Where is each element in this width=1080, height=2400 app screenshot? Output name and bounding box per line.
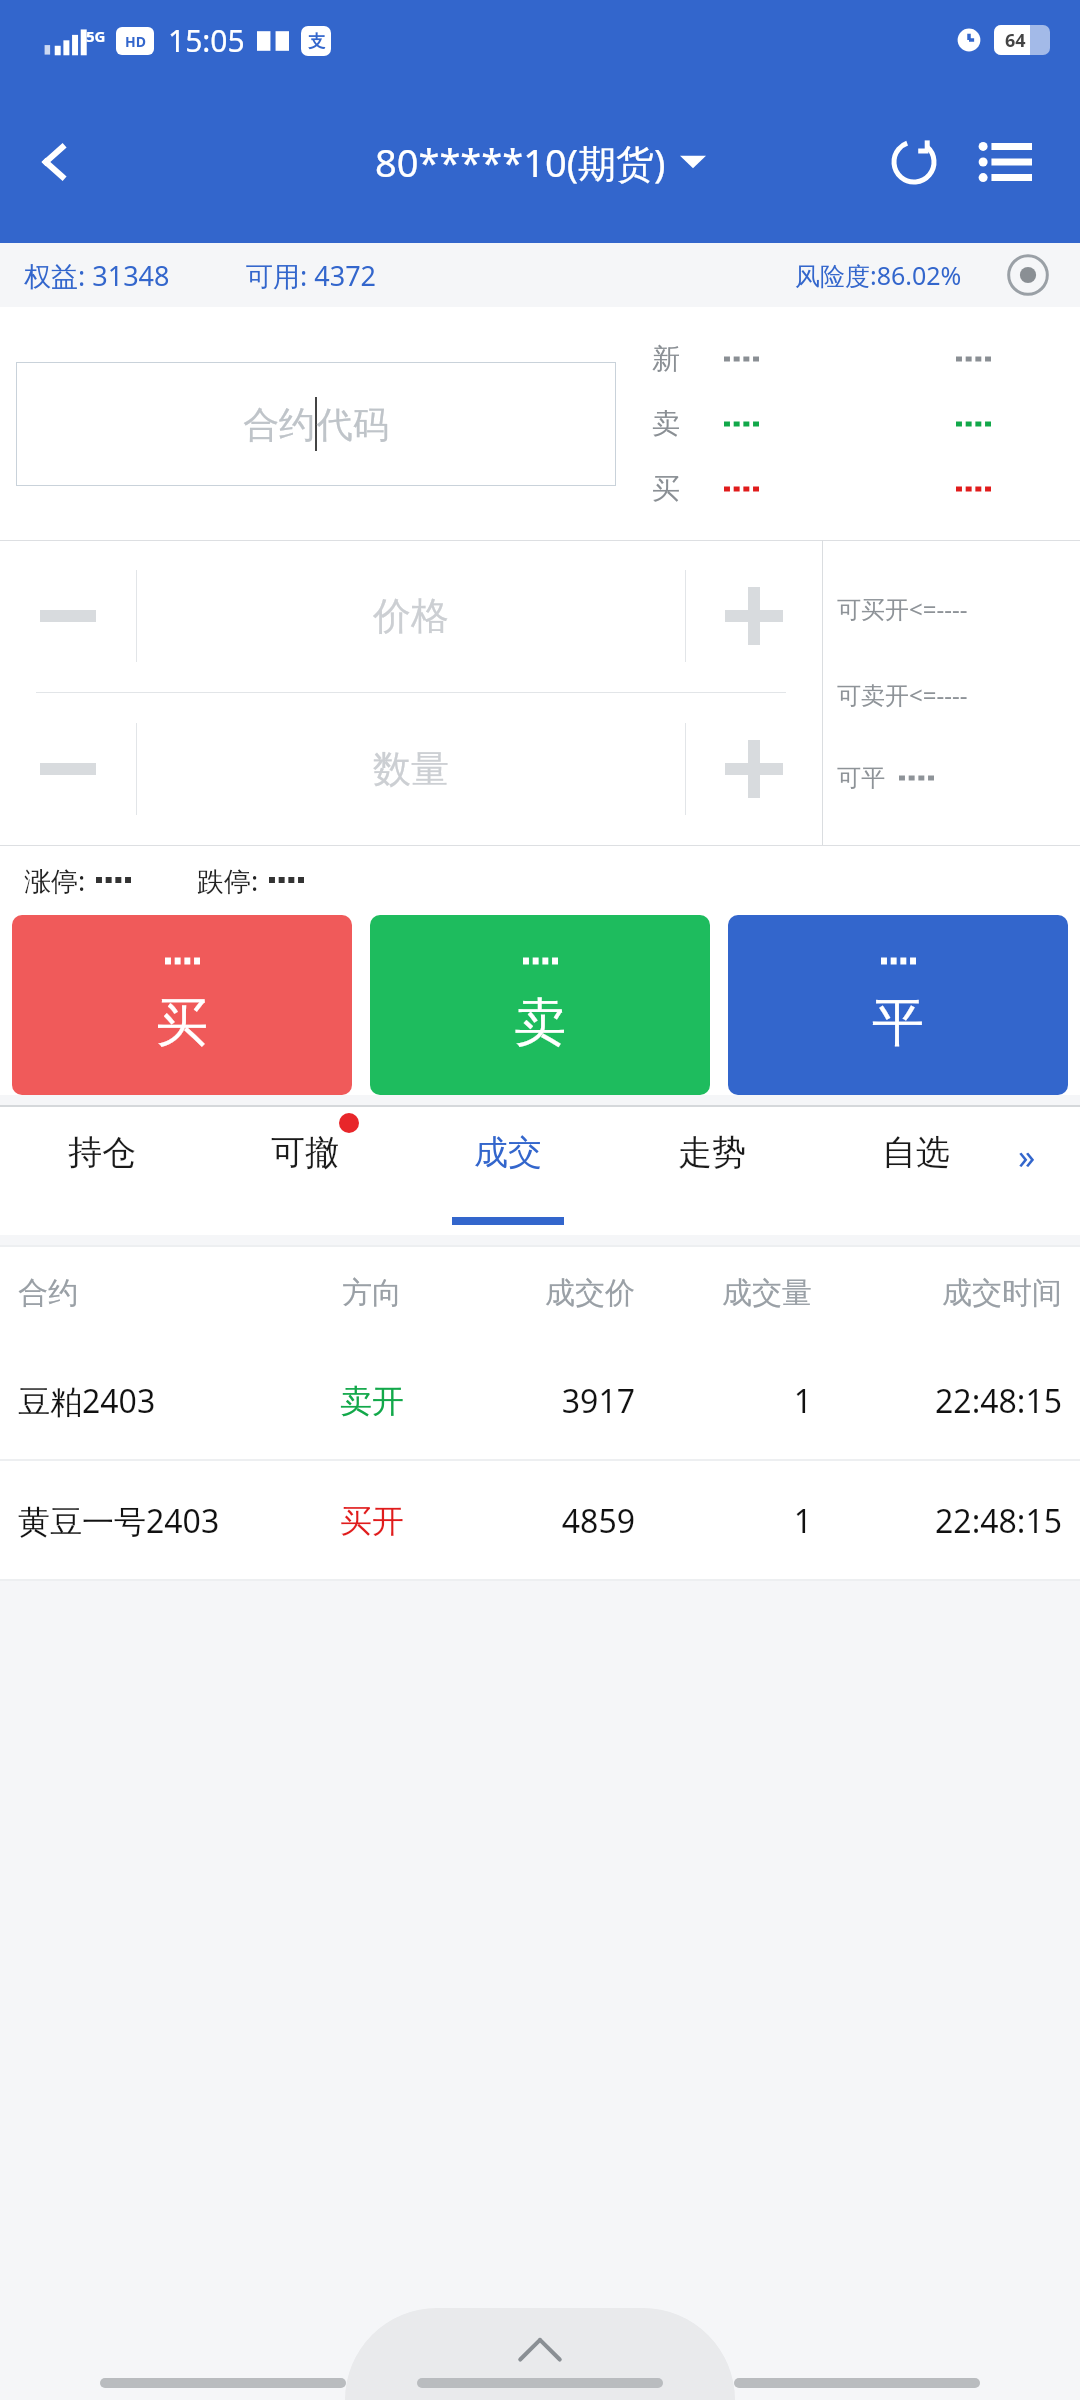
staticText: 风险度:86.02% <box>795 258 962 292</box>
staticText: 自选 <box>882 1131 950 1174</box>
staticText: 买 <box>652 471 706 506</box>
staticText: 5G <box>86 26 106 46</box>
staticText: 15:05 <box>168 20 245 61</box>
button[interactable]: Increase 价格 <box>686 540 822 692</box>
staticText: HD <box>125 32 146 51</box>
button[interactable]: Increase 数量 <box>686 693 822 845</box>
staticText: 80*****10(期货) <box>375 136 666 188</box>
staticText: 新 <box>652 341 706 376</box>
staticText: 价格 <box>373 592 449 640</box>
staticText: 4859 <box>451 1499 635 1543</box>
button[interactable]: 成交 <box>406 1105 610 1235</box>
button[interactable]: Back <box>0 80 110 243</box>
button[interactable]: Menu <box>960 116 1052 208</box>
button[interactable]: 可撤 <box>203 1105 406 1235</box>
button[interactable]: Navigation <box>100 2378 346 2388</box>
staticText: 豆粕2403 <box>18 1379 293 1423</box>
staticText: 可撤 <box>271 1131 339 1174</box>
button[interactable]: Toggle visibility <box>1000 247 1056 303</box>
staticText: 代码 <box>317 402 389 447</box>
staticText: 走势 <box>678 1131 746 1174</box>
staticText: 可平 <box>837 763 885 793</box>
button[interactable]: More tabs <box>1018 1105 1080 1235</box>
staticText: 可买开<=---- <box>837 592 968 625</box>
button[interactable]: Decrease 数量 <box>0 693 136 845</box>
button[interactable]: 自选 <box>814 1105 1018 1235</box>
staticText: 支 <box>308 31 325 52</box>
button[interactable]: 数量 <box>137 693 685 845</box>
staticText: 成交量 <box>635 1274 812 1312</box>
button[interactable]: Refresh <box>868 116 960 208</box>
button[interactable]: 合约 <box>16 362 616 486</box>
button[interactable]: 80*****10(期货) <box>375 136 706 188</box>
staticText: 可用: 4372 <box>246 257 377 294</box>
button[interactable]: 价格 <box>137 540 685 692</box>
staticText: 可卖开<=---- <box>837 678 968 711</box>
staticText: 买 <box>156 990 208 1056</box>
button[interactable]: Navigation <box>417 2378 663 2388</box>
staticText: 黄豆一号2403 <box>18 1499 293 1543</box>
button[interactable]: 持仓 <box>0 1105 203 1235</box>
staticText: 成交价 <box>451 1274 635 1312</box>
button[interactable]: Expand <box>345 2308 735 2400</box>
staticText: 22:48:15 <box>812 1379 1062 1423</box>
staticText: 64 <box>1005 28 1026 53</box>
staticText: 买开 <box>293 1501 451 1541</box>
button[interactable]: 豆粕2403 <box>0 1341 1080 1461</box>
staticText: 3917 <box>451 1379 635 1423</box>
staticText: 成交时间 <box>812 1274 1062 1312</box>
staticText: 1 <box>635 1499 812 1543</box>
button[interactable]: Navigation <box>734 2378 980 2388</box>
staticText: 跌停: <box>197 862 259 899</box>
staticText: 卖 <box>652 406 706 441</box>
staticText: 权益: 31348 <box>24 257 170 294</box>
staticText: 1 <box>635 1379 812 1423</box>
button[interactable]: 平 <box>728 915 1068 1095</box>
staticText: 持仓 <box>68 1131 136 1174</box>
staticText: 平 <box>872 990 924 1056</box>
staticText: » <box>1018 1133 1036 1179</box>
staticText: 涨停: <box>24 862 86 899</box>
button[interactable]: 黄豆一号2403 <box>0 1461 1080 1581</box>
button[interactable]: 买 <box>12 915 352 1095</box>
staticText: 合约 <box>18 1274 293 1312</box>
staticText: 卖开 <box>293 1381 451 1421</box>
staticText: 成交 <box>474 1131 542 1174</box>
button[interactable]: 卖 <box>370 915 710 1095</box>
staticText: 合约 <box>243 402 315 447</box>
staticText: 数量 <box>373 745 449 793</box>
staticText: 方向 <box>293 1274 451 1312</box>
staticText: 卖 <box>514 990 566 1056</box>
button[interactable]: 走势 <box>610 1105 814 1235</box>
staticText: 22:48:15 <box>812 1499 1062 1543</box>
button[interactable]: Decrease 价格 <box>0 540 136 692</box>
